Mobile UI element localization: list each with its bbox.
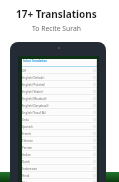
button[interactable]: Spanish (22, 123, 97, 129)
button[interactable]: English (Yusuf Ali) (22, 109, 97, 115)
staticText: Off (22, 69, 27, 73)
staticText: English (Pickthal) (22, 83, 45, 87)
staticText: English (Daryabadi) (22, 104, 49, 108)
staticText: Persian (22, 146, 33, 150)
staticText: Hindi (22, 174, 30, 178)
staticText: Malayu (22, 181, 32, 182)
button[interactable]: English (Pickthal) (22, 81, 97, 87)
staticText: To Recite Surah (32, 24, 81, 33)
staticText: Dutch (22, 160, 31, 164)
button[interactable]: Malayu (22, 179, 97, 182)
button[interactable]: Italian (22, 151, 97, 157)
button[interactable]: English (Shakir) (22, 88, 97, 94)
staticText: Italian (22, 153, 31, 157)
staticText: English (Shakir) (22, 90, 43, 94)
staticText: Urdu (22, 118, 29, 122)
button[interactable]: Indonesian (22, 165, 97, 171)
button[interactable]: English (Maududi) (22, 95, 97, 101)
button[interactable]: Hindi (22, 172, 97, 178)
button[interactable]: Urdu (22, 116, 97, 122)
staticText: English (Yusuf Ali) (22, 111, 46, 115)
staticText: French (22, 132, 32, 136)
staticText: Select Translation (23, 59, 47, 63)
button[interactable]: English (Default) (22, 74, 97, 80)
staticText: English (Maududi) (22, 97, 47, 101)
button[interactable]: English (Daryabadi) (22, 102, 97, 108)
button[interactable]: Persian (22, 144, 97, 150)
button[interactable]: Dutch (22, 158, 97, 164)
staticText: Spanish (22, 125, 33, 129)
staticText: Indonesian (22, 167, 38, 171)
button[interactable]: French (22, 130, 97, 136)
staticText: Chinese (22, 139, 33, 143)
staticText: 17+ Translations (16, 7, 97, 21)
button[interactable]: Off (22, 67, 97, 73)
button[interactable]: Chinese (22, 137, 97, 143)
staticText: English (Default) (22, 76, 45, 80)
